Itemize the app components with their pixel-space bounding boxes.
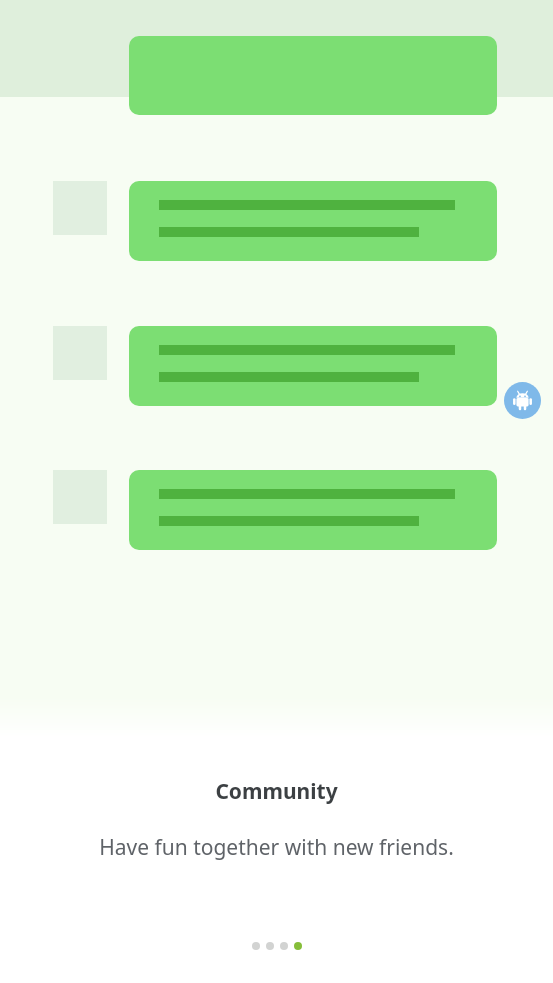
button[interactable] [129, 326, 497, 406]
button[interactable] [129, 36, 497, 115]
button[interactable] [129, 470, 497, 550]
button[interactable] [280, 942, 288, 950]
button[interactable] [266, 942, 274, 950]
button[interactable] [294, 942, 302, 950]
button[interactable] [252, 942, 260, 950]
button[interactable]: Android assistant [504, 382, 541, 419]
staticText: Community [215, 777, 338, 806]
button[interactable] [129, 181, 497, 261]
staticText: Have fun together with new friends. [99, 833, 454, 862]
